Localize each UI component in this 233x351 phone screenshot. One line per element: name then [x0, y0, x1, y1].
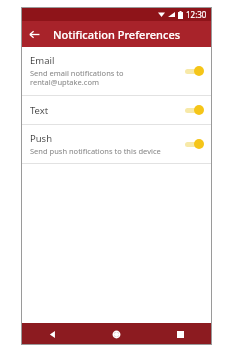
- button[interactable]: Push: [21, 125, 212, 163]
- button[interactable]: Recent apps: [148, 323, 212, 345]
- button[interactable]: Back: [21, 323, 84, 345]
- staticText: 12:30: [186, 9, 207, 20]
- button[interactable]: Back: [21, 21, 47, 47]
- staticText: Text: [30, 104, 49, 117]
- button[interactable]: Toggle: [182, 64, 204, 78]
- button[interactable]: Home: [84, 323, 148, 345]
- button[interactable]: Toggle: [182, 137, 204, 151]
- button[interactable]: Email: [21, 47, 212, 95]
- staticText: Send email notifications to rental@uptak…: [30, 68, 124, 88]
- button[interactable]: Text: [21, 96, 212, 124]
- staticText: Push: [30, 132, 53, 145]
- staticText: Email: [30, 54, 55, 67]
- staticText: Send push notifications to this device: [30, 146, 161, 156]
- staticText: Notification Preferences: [53, 27, 181, 42]
- button[interactable]: Toggle: [182, 103, 204, 117]
